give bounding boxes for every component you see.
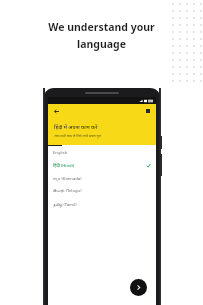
staticText: We understand your [48,20,155,34]
staticText: language [77,37,126,51]
staticText: தமிழ் (Tamil) [53,202,77,208]
button[interactable]: English [48,146,156,159]
staticText: English [53,150,68,156]
button[interactable]: Menu [144,107,152,115]
button[interactable]: தமிழ் (Tamil) [48,198,156,211]
button[interactable]: తెలుగు (Telugu) [48,185,156,198]
button[interactable]: Back [52,107,60,115]
staticText: हिंदी (Hindi) [53,163,75,169]
staticText: आप सभी काम ले लिये अभी सबल यूज़ [54,133,101,138]
staticText: हिंदी में अपना काम करें [54,123,98,130]
button[interactable]: हिंदी (Hindi) [48,159,156,172]
staticText: ಕನ್ನಡ (Kannada) [53,176,82,182]
button[interactable]: Next [130,279,147,296]
button[interactable]: ಕನ್ನಡ (Kannada) [48,172,156,185]
staticText: తెలుగు (Telugu) [53,188,82,195]
